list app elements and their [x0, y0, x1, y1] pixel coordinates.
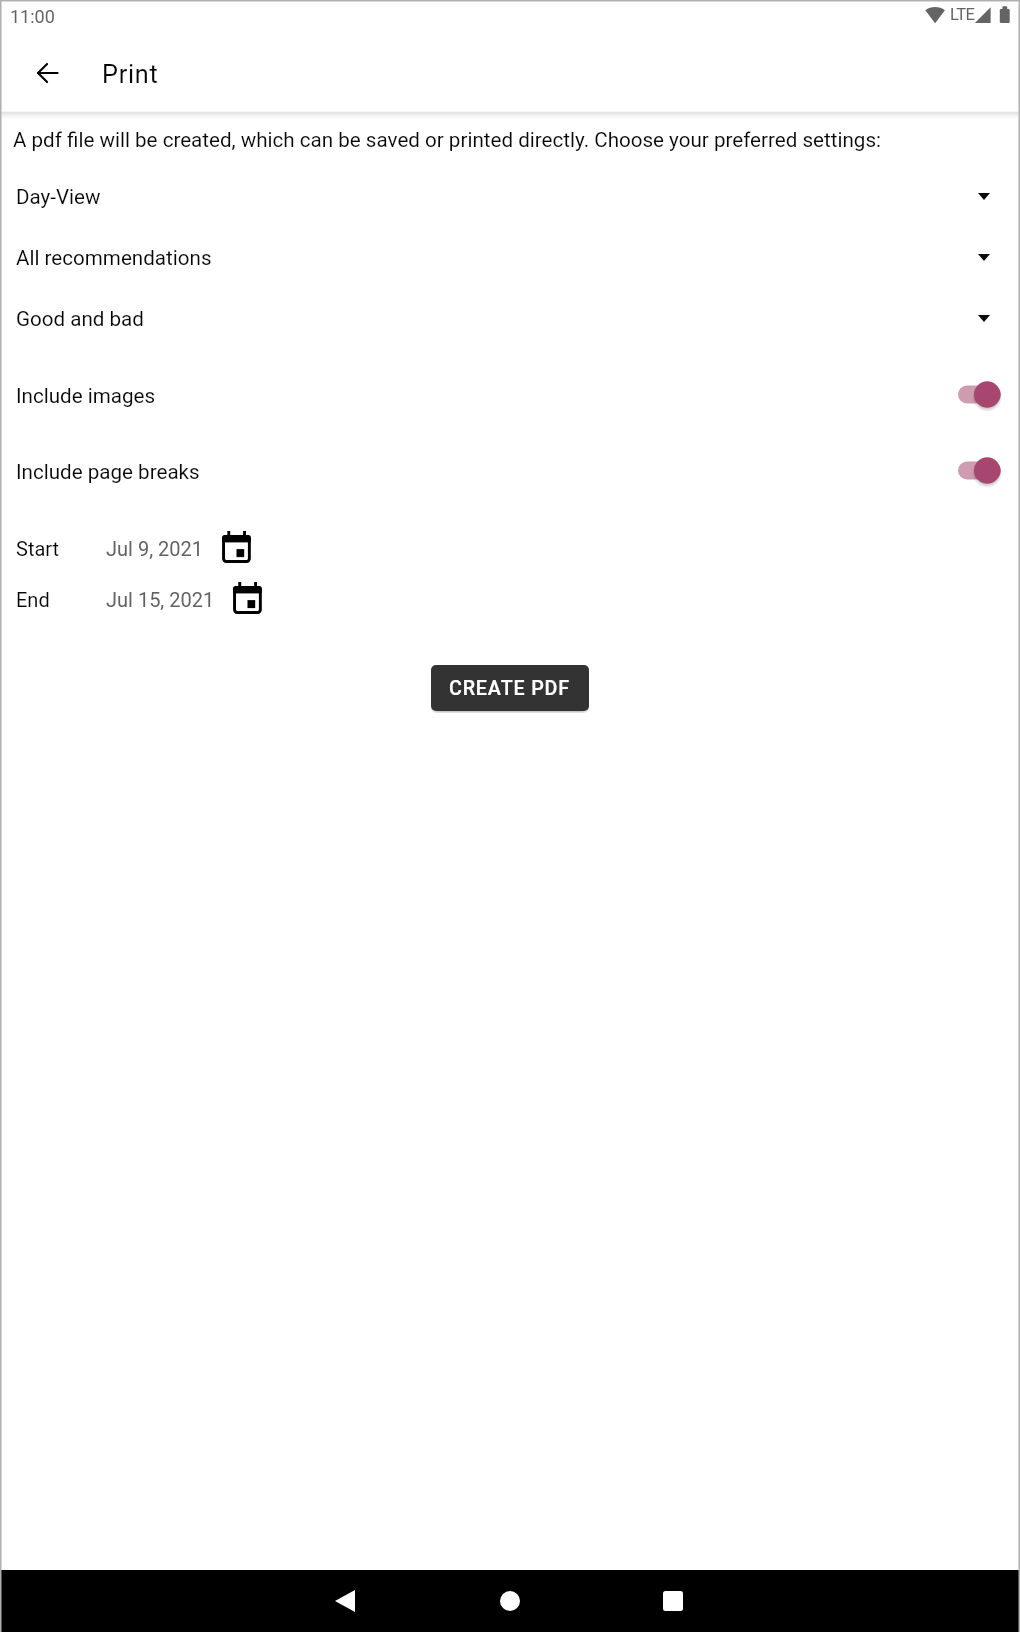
staticText: A pdf file will be created, which can be…	[13, 128, 1008, 152]
button[interactable]: Home	[470, 1570, 550, 1632]
button[interactable]: Include images	[0, 372, 1020, 424]
button[interactable]: Back	[305, 1570, 385, 1632]
staticText: Day-View	[16, 185, 101, 209]
button[interactable]: Include page breaks	[0, 448, 1020, 500]
button[interactable]: End	[0, 582, 1020, 626]
staticText: 11:00	[10, 6, 55, 27]
button[interactable]: Day-View	[0, 177, 1020, 223]
staticText: Include images	[16, 384, 156, 408]
staticText: Start	[16, 537, 60, 560]
staticText: Jul 15, 2021	[106, 588, 215, 611]
staticText: All recommendations	[16, 246, 212, 270]
staticText: LTE	[950, 5, 975, 24]
button[interactable]: All recommendations	[0, 238, 1020, 284]
staticText: Jul 9, 2021	[106, 537, 203, 560]
button[interactable]: Good and bad	[0, 299, 1020, 345]
staticText: Good and bad	[16, 307, 144, 331]
staticText: Print	[102, 60, 159, 90]
button[interactable]: Back	[21, 47, 73, 99]
staticText: Include page breaks	[16, 460, 200, 484]
button[interactable]: CREATE PDF	[431, 665, 589, 711]
button[interactable]: Recent apps	[633, 1570, 713, 1632]
staticText: End	[16, 588, 50, 611]
button[interactable]: Start	[0, 531, 1020, 575]
staticText: CREATE PDF	[449, 677, 571, 700]
